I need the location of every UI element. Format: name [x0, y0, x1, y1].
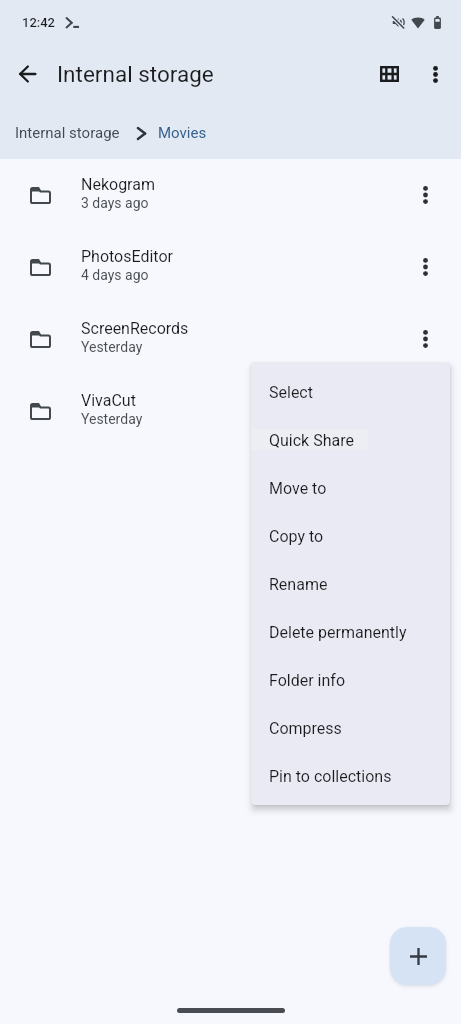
button[interactable]: More options [411, 50, 459, 98]
staticText: Select [269, 383, 313, 402]
button[interactable]: VivaCut [0, 375, 461, 447]
staticText: Folder info [269, 671, 346, 690]
staticText: Move to [269, 479, 327, 498]
staticText: Yesterday [81, 339, 143, 355]
button[interactable]: Delete permanently [251, 608, 450, 656]
button[interactable]: More options for Nekogram [403, 173, 447, 217]
staticText: 3 days ago [81, 195, 149, 211]
staticText: Delete permanently [269, 623, 407, 642]
button[interactable]: Grid view [365, 50, 413, 98]
staticText: Internal storage [57, 61, 214, 87]
button[interactable]: Nekogram [0, 159, 461, 231]
staticText: Copy to [269, 527, 324, 546]
button[interactable]: Folder info [251, 656, 450, 704]
staticText: ScreenRecords [81, 319, 189, 338]
button[interactable]: ScreenRecords [0, 303, 461, 375]
button[interactable]: Compress [251, 704, 450, 752]
button[interactable]: More options for ScreenRecords [403, 317, 447, 361]
staticText: Rename [269, 575, 328, 594]
staticText: Movies [158, 124, 207, 142]
button[interactable]: Create new [390, 927, 446, 985]
button[interactable]: Select [251, 368, 450, 416]
staticText: 12:42 [22, 15, 55, 30]
button[interactable]: Back [3, 50, 51, 98]
button[interactable]: Move to [251, 464, 450, 512]
staticText: Nekogram [81, 175, 155, 194]
button[interactable]: More options for PhotosEditor [403, 245, 447, 289]
staticText: Quick Share [269, 431, 354, 450]
button[interactable]: Movies [158, 124, 207, 142]
button[interactable]: Pin to collections [251, 752, 450, 800]
staticText: Pin to collections [269, 767, 392, 786]
staticText: Yesterday [81, 411, 143, 427]
button[interactable]: Internal storage [15, 124, 120, 142]
button[interactable]: Rename [251, 560, 450, 608]
staticText: Internal storage [15, 124, 120, 142]
button[interactable]: PhotosEditor [0, 231, 461, 303]
button[interactable]: Quick Share [251, 416, 450, 464]
staticText: 4 days ago [81, 267, 149, 283]
staticText: VivaCut [81, 391, 136, 410]
button[interactable]: Copy to [251, 512, 450, 560]
staticText: PhotosEditor [81, 247, 173, 266]
staticText: Compress [269, 719, 342, 738]
